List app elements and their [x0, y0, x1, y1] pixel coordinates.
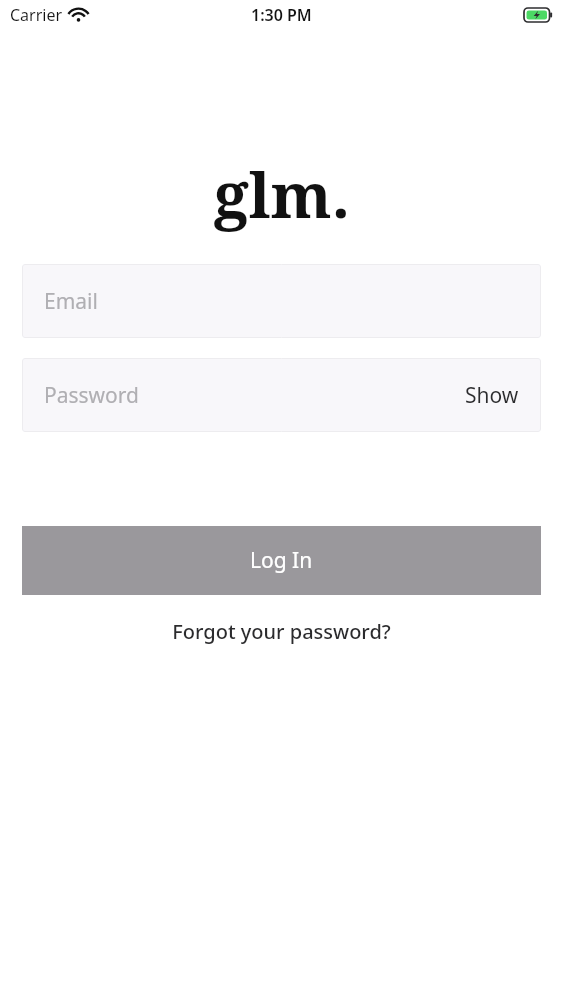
staticText: Password [44, 381, 465, 410]
button[interactable]: Password [22, 358, 541, 432]
staticText: 1:30 PM [251, 4, 312, 26]
staticText: Carrier [10, 4, 63, 26]
staticText: Show [465, 381, 519, 410]
button[interactable]: Email [22, 264, 541, 338]
staticText: glm. [214, 152, 350, 236]
staticText: Email [44, 287, 519, 316]
staticText: Forgot your password? [172, 618, 391, 645]
button[interactable]: Forgot your password? [0, 609, 563, 653]
staticText: Log In [250, 546, 313, 575]
button[interactable]: Log In [22, 526, 541, 595]
button[interactable]: Show [465, 381, 519, 410]
